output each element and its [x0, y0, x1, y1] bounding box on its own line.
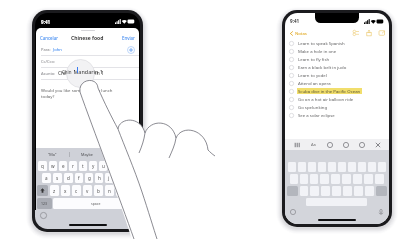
button[interactable]: Learn to fly fish	[289, 55, 389, 63]
button[interactable]: t	[79, 161, 87, 171]
button[interactable]: s	[53, 173, 62, 183]
button[interactable]: e	[59, 161, 67, 171]
button[interactable]: Tool3	[338, 139, 354, 150]
button[interactable]: Shift	[37, 185, 48, 196]
staticText: Mandarin 1	[72, 68, 103, 75]
button[interactable]: Notas	[287, 29, 309, 37]
button[interactable]: i	[109, 161, 117, 171]
button[interactable]: z	[50, 185, 59, 196]
button[interactable]: g	[85, 173, 93, 183]
button[interactable]: Go spelunking	[289, 103, 389, 111]
button[interactable]: r	[69, 161, 77, 171]
button[interactable]: Share	[365, 29, 373, 37]
staticText: z	[53, 188, 56, 194]
button[interactable]: w	[49, 161, 57, 171]
button[interactable]: Tool5	[370, 139, 386, 150]
button[interactable]: Maybe	[70, 148, 104, 160]
button[interactable]: Enviar	[118, 32, 139, 44]
button[interactable]: 123	[37, 198, 52, 209]
staticText: See a solar eclipse	[298, 112, 335, 118]
staticText: Cc/Cco:	[41, 59, 55, 64]
button[interactable]: d	[64, 173, 73, 183]
button[interactable]: h	[95, 173, 103, 183]
button[interactable]: New note	[378, 29, 386, 37]
button[interactable]: x	[61, 185, 70, 196]
button[interactable]: b	[94, 185, 103, 196]
button[interactable]: Mar	[105, 148, 139, 160]
button[interactable]: Go on a hot air balloon ride	[289, 95, 389, 103]
button[interactable]: u	[99, 161, 107, 171]
button[interactable]: Add contact	[127, 46, 135, 54]
button[interactable]: Scuba dive in the Pacific Ocean	[289, 87, 389, 95]
button[interactable]: Cancelar	[36, 32, 62, 44]
button[interactable]: a	[42, 173, 51, 183]
button[interactable]: “Ma”	[36, 148, 69, 160]
button[interactable]: Learn to yodel	[289, 71, 389, 79]
staticText: Aa	[311, 142, 316, 147]
button[interactable]: v	[83, 185, 92, 196]
button[interactable]: y	[89, 161, 97, 171]
button[interactable]: p	[129, 161, 137, 171]
staticText: 9:41	[290, 18, 300, 24]
button[interactable]: Learn to speak Spanish	[289, 39, 389, 47]
button[interactable]: Emoji	[290, 209, 296, 215]
button[interactable]: Dictate	[378, 209, 384, 215]
staticText: “Ma”	[48, 152, 57, 157]
staticText: Go on a hot air balloon ride	[298, 96, 354, 102]
button[interactable]: Attend an opera	[289, 79, 389, 87]
button[interactable]: Emoji	[40, 212, 47, 219]
staticText: w	[51, 163, 55, 169]
button[interactable]: space	[53, 198, 138, 209]
button[interactable]: See a solar eclipse	[289, 111, 389, 119]
button[interactable]: Tool2	[322, 139, 338, 150]
button[interactable]: Checklist	[352, 29, 360, 37]
button[interactable]: n	[105, 185, 114, 196]
button[interactable]: m	[116, 185, 125, 196]
button[interactable]: Earn a black belt in judo	[289, 63, 389, 71]
button[interactable]: Tool0	[288, 139, 305, 150]
staticText: Maybe	[81, 152, 93, 157]
button[interactable]: Tool4	[354, 139, 370, 150]
button[interactable]: Make a hole in one	[289, 47, 389, 55]
button[interactable]: c	[72, 185, 81, 196]
button[interactable]: q	[38, 161, 47, 171]
button[interactable]: j	[105, 173, 113, 183]
button[interactable]: Tool1	[305, 139, 322, 150]
button[interactable]: f	[75, 173, 83, 183]
